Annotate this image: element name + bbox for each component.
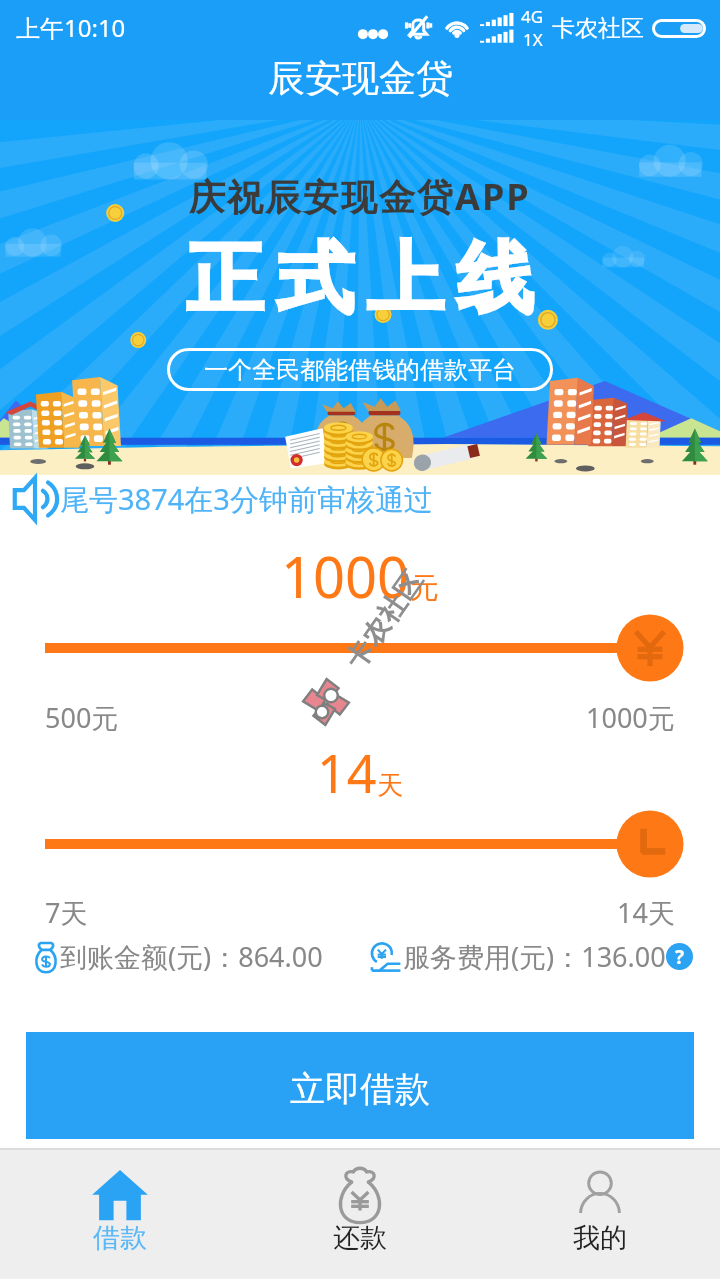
staticText: 天: [377, 769, 403, 802]
staticText: 1000: [281, 538, 410, 614]
button[interactable]: Term slider: [0, 809, 720, 879]
staticText: 我的: [573, 1221, 627, 1255]
button[interactable]: 借款: [0, 1150, 240, 1279]
staticText: 7天: [45, 894, 88, 931]
staticText: 4G: [521, 5, 544, 28]
staticText: 500元: [45, 699, 119, 736]
button[interactable]: Help: [666, 943, 693, 970]
staticText: 还款: [333, 1221, 387, 1255]
button[interactable]: 还款: [240, 1150, 480, 1279]
staticText: 元: [410, 570, 439, 607]
staticText: 卡农社区: [552, 14, 644, 43]
staticText: 立即借款: [290, 1067, 430, 1111]
staticText: 上午10:10: [16, 11, 126, 44]
staticText: ?: [675, 944, 685, 970]
staticText: 正式上线: [180, 231, 540, 328]
button[interactable]: 立即借款: [26, 1032, 694, 1139]
staticText: 1X: [523, 28, 543, 51]
staticText: 庆祝辰安现金贷APP: [189, 172, 531, 221]
staticText: 14: [317, 737, 377, 808]
staticText: 1000元: [586, 699, 675, 736]
staticText: 尾号3874在3分钟前审核通过: [60, 479, 433, 519]
staticText: 辰安现金贷: [268, 55, 453, 102]
staticText: 一个全民都能借钱的借款平台: [204, 355, 516, 385]
staticText: 14天: [617, 894, 675, 931]
staticText: 到账金额(元)：864.00: [60, 938, 323, 975]
staticText: 服务费用(元)：136.00: [403, 938, 666, 975]
button[interactable]: Amount slider: [0, 613, 720, 683]
button[interactable]: Announcement: [12, 475, 720, 523]
staticText: 借款: [93, 1221, 147, 1255]
button[interactable]: 我的: [480, 1150, 720, 1279]
staticText: 卡农社区: [338, 564, 430, 676]
